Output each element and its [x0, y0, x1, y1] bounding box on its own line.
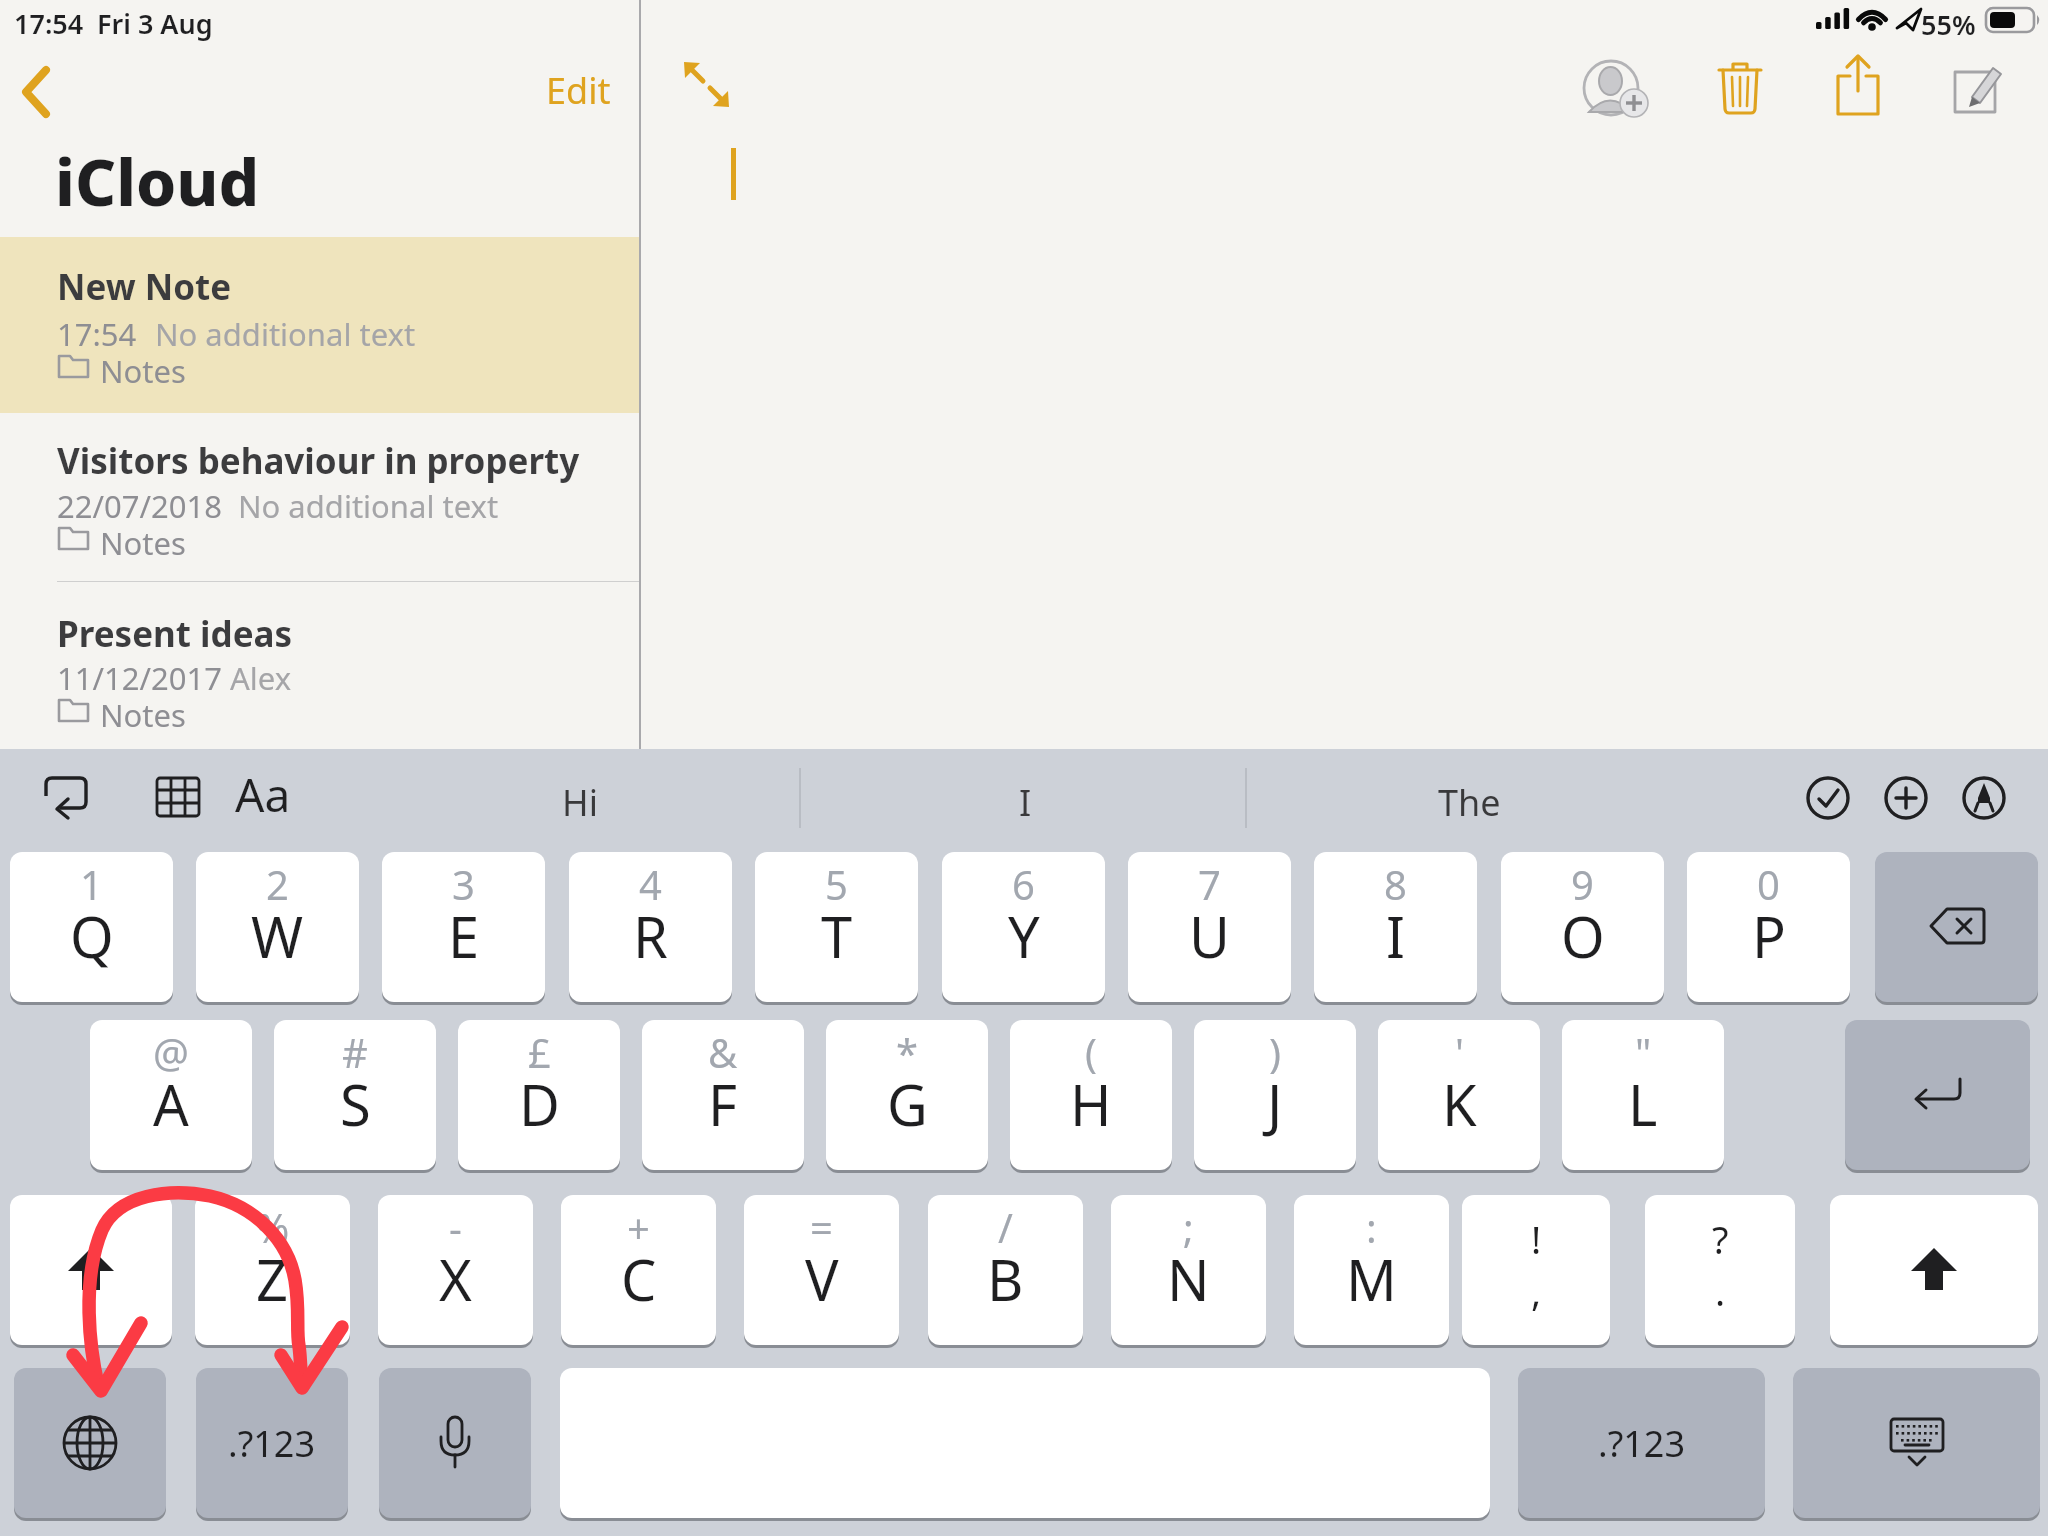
staticText: 11/12/2017: [57, 657, 222, 699]
staticText: 9: [1571, 857, 1594, 911]
button[interactable]: [1834, 53, 1882, 117]
button[interactable]: /: [928, 1195, 1083, 1345]
button[interactable]: (: [1010, 1020, 1172, 1170]
staticText: #: [342, 1025, 368, 1079]
button[interactable]: ;: [1111, 1195, 1266, 1345]
button[interactable]: [1830, 1195, 2038, 1345]
button[interactable]: 4: [569, 852, 732, 1002]
button[interactable]: 9: [1501, 852, 1664, 1002]
staticText: 22/07/2018: [57, 485, 222, 527]
button[interactable]: 0: [1687, 852, 1850, 1002]
button[interactable]: &: [642, 1020, 804, 1170]
button[interactable]: Edit: [540, 66, 620, 110]
button[interactable]: +: [561, 1195, 716, 1345]
button[interactable]: [0, 237, 639, 413]
button[interactable]: %: [195, 1195, 350, 1345]
staticText: T: [821, 898, 853, 974]
button[interactable]: 7: [1128, 852, 1291, 1002]
button[interactable]: [1962, 776, 2007, 821]
staticText: K: [1442, 1066, 1477, 1142]
button[interactable]: [1952, 55, 2004, 117]
button[interactable]: [1884, 776, 1929, 821]
button[interactable]: ': [1378, 1020, 1540, 1170]
button[interactable]: :: [1294, 1195, 1449, 1345]
button[interactable]: [10, 1195, 172, 1345]
button[interactable]: ?: [1645, 1195, 1795, 1345]
staticText: Notes: [100, 350, 186, 392]
button[interactable]: [1583, 58, 1645, 118]
button[interactable]: [1806, 776, 1851, 821]
staticText: O: [1561, 898, 1605, 974]
staticText: J: [1267, 1066, 1283, 1142]
staticText: Hi: [562, 778, 598, 827]
button[interactable]: [1845, 1020, 2030, 1170]
button[interactable]: 3: [382, 852, 545, 1002]
button[interactable]: [0, 583, 639, 748]
button[interactable]: Aa: [235, 763, 309, 823]
staticText: Aa: [235, 763, 291, 823]
staticText: Alex: [230, 657, 292, 699]
button[interactable]: ): [1194, 1020, 1356, 1170]
staticText: Z: [256, 1241, 289, 1317]
button[interactable]: [22, 66, 52, 118]
button[interactable]: [14, 1368, 166, 1518]
staticText: @: [153, 1025, 189, 1079]
button[interactable]: =: [744, 1195, 899, 1345]
button[interactable]: [1717, 57, 1765, 117]
staticText: Q: [70, 898, 114, 974]
button[interactable]: [155, 776, 201, 818]
button[interactable]: @: [90, 1020, 252, 1170]
button[interactable]: !: [1462, 1195, 1610, 1345]
staticText: ': [1455, 1025, 1464, 1079]
button[interactable]: 2: [196, 852, 359, 1002]
staticText: C: [621, 1241, 657, 1317]
staticText: ": [1635, 1025, 1652, 1079]
staticText: 5: [825, 857, 848, 911]
button[interactable]: .?123: [196, 1368, 348, 1518]
button[interactable]: ": [1562, 1020, 1724, 1170]
staticText: 0: [1757, 857, 1780, 911]
button[interactable]: *: [826, 1020, 988, 1170]
staticText: No additional text: [238, 485, 499, 527]
staticText: Visitors behaviour in property: [57, 437, 580, 485]
staticText: %: [256, 1200, 290, 1254]
staticText: /: [998, 1200, 1013, 1254]
staticText: 1: [80, 857, 103, 911]
button[interactable]: 6: [942, 852, 1105, 1002]
staticText: V: [805, 1241, 839, 1317]
button[interactable]: .?123: [1518, 1368, 1765, 1518]
staticText: P: [1752, 898, 1786, 974]
button[interactable]: £: [458, 1020, 620, 1170]
staticText: The: [1438, 778, 1501, 827]
staticText: .: [1715, 1265, 1726, 1317]
button[interactable]: [0, 413, 639, 583]
staticText: 3: [452, 857, 475, 911]
staticText: ;: [1183, 1200, 1194, 1254]
staticText: New Note: [57, 263, 232, 311]
staticText: H: [1070, 1066, 1112, 1142]
staticText: I: [1386, 898, 1405, 974]
staticText: 17:54: [57, 313, 137, 355]
staticText: Y: [1008, 898, 1040, 974]
staticText: S: [340, 1066, 371, 1142]
staticText: U: [1189, 898, 1230, 974]
staticText: X: [439, 1241, 472, 1317]
button[interactable]: 5: [755, 852, 918, 1002]
button[interactable]: [1875, 852, 2038, 1002]
staticText: N: [1167, 1241, 1210, 1317]
button[interactable]: #: [274, 1020, 436, 1170]
staticText: Present ideas: [57, 610, 293, 658]
button[interactable]: [40, 772, 92, 822]
button[interactable]: -: [378, 1195, 533, 1345]
staticText: D: [519, 1066, 560, 1142]
staticText: +: [627, 1200, 650, 1254]
staticText: ,: [1531, 1265, 1542, 1317]
button[interactable]: [1793, 1368, 2040, 1518]
button[interactable]: [379, 1368, 531, 1518]
button[interactable]: 8: [1314, 852, 1477, 1002]
button[interactable]: 1: [10, 852, 173, 1002]
staticText: 7: [1198, 857, 1221, 911]
staticText: £: [528, 1025, 551, 1079]
button[interactable]: [683, 61, 731, 111]
